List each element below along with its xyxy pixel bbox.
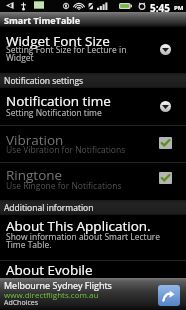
staticText: Setting Font Size for Lecture in Widget xyxy=(6,44,154,64)
staticText: Notification settings xyxy=(4,75,84,87)
button[interactable]: Expand xyxy=(160,101,171,112)
staticText: Use Vibration for Notifications xyxy=(6,144,154,156)
staticText: Smart TimeTable xyxy=(4,14,81,26)
staticText: Use Ringone for Notifications xyxy=(6,180,154,192)
staticText: Vibration xyxy=(6,131,154,149)
button[interactable] xyxy=(0,126,186,162)
button[interactable]: Open advertisement xyxy=(158,285,180,306)
button[interactable] xyxy=(0,28,186,73)
staticText: 5:45 xyxy=(150,1,171,13)
staticText: AdChoices xyxy=(4,298,39,308)
button[interactable]: Toggle xyxy=(159,172,172,184)
button[interactable] xyxy=(0,89,186,125)
staticText: Melbourne Sydney Flights xyxy=(4,279,112,291)
staticText: Setting Notification time xyxy=(6,107,154,119)
staticText: Widget Font Size xyxy=(6,32,154,50)
button[interactable] xyxy=(0,261,186,281)
button[interactable]: Toggle xyxy=(159,137,172,149)
button[interactable] xyxy=(0,163,186,199)
staticText: About This Application. xyxy=(6,217,171,235)
button[interactable]: Expand xyxy=(160,44,171,55)
staticText: Show information about Smart Lecture Tim… xyxy=(6,231,171,251)
button[interactable] xyxy=(0,216,186,260)
staticText: Additional information xyxy=(4,202,94,214)
staticText: Notification time xyxy=(6,92,154,110)
staticText: Ringtone xyxy=(6,166,154,184)
staticText: PM xyxy=(174,4,184,12)
staticText: About Evobile xyxy=(6,261,171,279)
staticText: www.directflights.com.au xyxy=(4,289,99,300)
